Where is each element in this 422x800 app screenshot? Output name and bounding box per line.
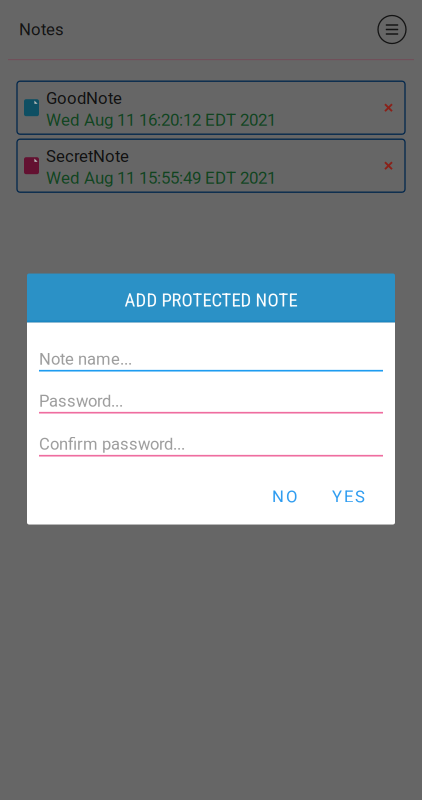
staticText: Wed Aug 11 15:55:49 EDT 2021 (46, 168, 276, 188)
button[interactable]: Menu (378, 15, 406, 43)
staticText: E (344, 487, 353, 506)
button[interactable]: Delete GoodNote (372, 89, 405, 126)
staticText: ADD PROTECTED NOTE (124, 289, 297, 311)
staticText: Y (332, 487, 342, 506)
staticText: GoodNote (46, 89, 122, 108)
staticText: Note name... (39, 349, 132, 369)
staticText: N (272, 487, 284, 506)
staticText: Notes (19, 20, 64, 39)
staticText: S (355, 487, 365, 506)
staticText: O (286, 487, 297, 506)
button[interactable]: N (261, 478, 308, 515)
staticText: Password... (39, 391, 123, 411)
button[interactable]: Y (321, 478, 376, 515)
button[interactable]: Delete SecretNote (372, 147, 405, 184)
staticText: Confirm password... (39, 434, 185, 454)
staticText: Wed Aug 11 16:20:12 EDT 2021 (46, 110, 276, 130)
staticText: SecretNote (46, 147, 129, 166)
button[interactable]: GoodNote (17, 81, 405, 134)
button[interactable]: SecretNote (17, 139, 405, 192)
